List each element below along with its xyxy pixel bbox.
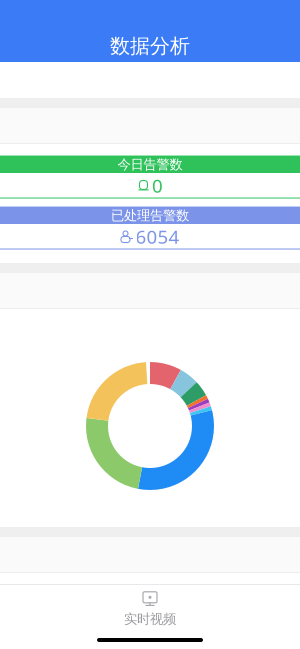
staticText: 0 bbox=[152, 173, 163, 198]
staticText: 6054 bbox=[135, 224, 179, 249]
button[interactable]: 实时视频 bbox=[50, 585, 250, 631]
staticText: 数据分析 bbox=[110, 34, 190, 58]
button[interactable]: 已处理告警数 bbox=[0, 207, 300, 249]
staticText: 实时视频 bbox=[124, 611, 176, 627]
button[interactable]: 今日告警数 bbox=[0, 156, 300, 198]
staticText: 已处理告警数 bbox=[111, 207, 189, 224]
staticText: 今日告警数 bbox=[117, 156, 182, 173]
